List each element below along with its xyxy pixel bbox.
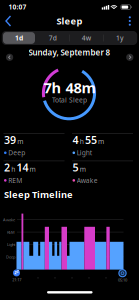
button[interactable]: 1y [103, 31, 137, 45]
staticText: REM [8, 176, 22, 185]
staticText: 1d [15, 34, 23, 42]
staticText: 05:10 [118, 277, 127, 283]
button[interactable] [126, 15, 134, 27]
staticText: h [11, 165, 15, 174]
staticText: Awake [3, 217, 15, 222]
staticText: h [80, 137, 84, 146]
button[interactable] [126, 53, 134, 61]
button[interactable] [3, 15, 13, 27]
staticText: Sleep Timeline [4, 188, 73, 201]
button[interactable]: 1d [2, 31, 36, 45]
button[interactable]: 4w [69, 31, 103, 45]
button[interactable] [6, 53, 14, 61]
staticText: 55 [85, 133, 97, 147]
staticText: Deep [8, 148, 25, 157]
staticText: Awake [77, 176, 98, 185]
staticText: REM [7, 229, 15, 235]
staticText: 4w [82, 34, 91, 42]
staticText: Total Sleep [52, 96, 87, 104]
staticText: Sunday, September 8 [28, 47, 110, 58]
staticText: Sleep [56, 15, 82, 27]
staticText: 5 [72, 160, 78, 175]
staticText: 21:17 [12, 277, 21, 282]
staticText: 4 [72, 133, 78, 147]
staticText: m [98, 137, 104, 146]
staticText: 14 [16, 160, 28, 175]
staticText: 1y [116, 34, 124, 42]
staticText: 7h 48m [43, 78, 95, 97]
staticText: Light [77, 148, 92, 157]
staticText: Light [7, 242, 15, 247]
button[interactable]: 7d [36, 31, 70, 45]
staticText: m [80, 165, 86, 174]
staticText: 39 [4, 133, 16, 147]
staticText: m [30, 165, 36, 174]
staticText: 7d [49, 34, 57, 42]
staticText: Deep [6, 254, 15, 259]
staticText: m [17, 137, 23, 146]
staticText: 2 [4, 160, 10, 175]
staticText: 10:07 [8, 2, 26, 11]
